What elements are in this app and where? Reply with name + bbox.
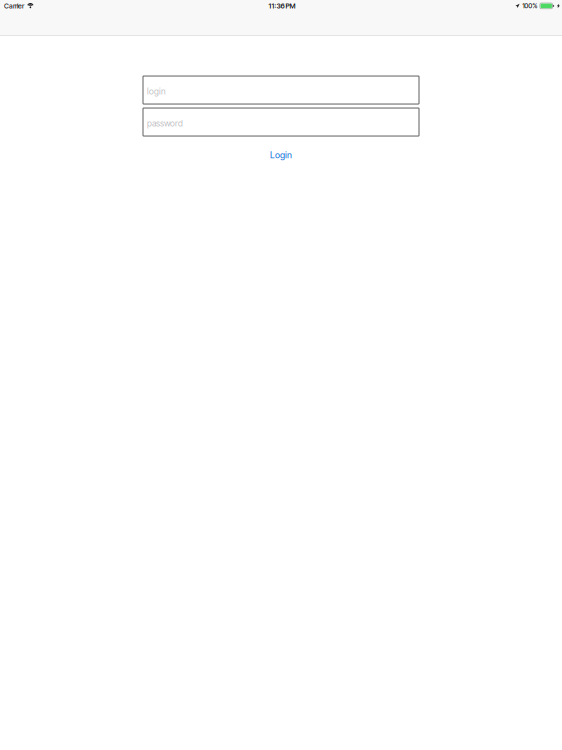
staticText: login — [147, 86, 166, 97]
button[interactable]: password — [143, 108, 419, 136]
staticText: Login — [270, 150, 292, 160]
button[interactable]: login — [143, 76, 419, 104]
staticText: Carrier — [4, 2, 24, 10]
button[interactable]: Login — [259, 140, 303, 170]
staticText: password — [147, 118, 183, 129]
staticText: 100% — [522, 2, 537, 10]
staticText: 11:36 PM — [268, 2, 295, 10]
